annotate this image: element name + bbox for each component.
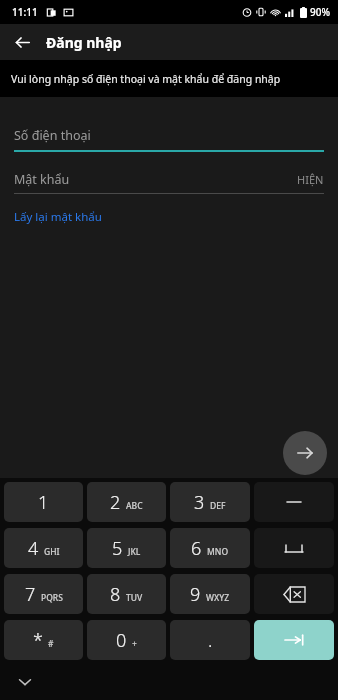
staticText: ABC [126, 500, 143, 512]
button[interactable]: 7 [4, 574, 83, 614]
button[interactable]: 2 [87, 482, 166, 522]
staticText: * [33, 628, 43, 653]
staticText: PQRS [41, 592, 63, 604]
button[interactable]: Tiep tuc [283, 431, 327, 475]
button[interactable]: Lấy lại mật khẩu [14, 209, 102, 225]
staticText: 6 [191, 536, 202, 561]
button[interactable]: Số điện thoại [14, 120, 324, 150]
staticText: TUV [126, 592, 143, 604]
staticText: GHI [44, 546, 60, 558]
staticText: 9 [190, 582, 201, 607]
button[interactable]: Tiep tuc [254, 620, 334, 660]
staticText: MNO [207, 546, 229, 558]
staticText: 11:11 [12, 5, 38, 19]
button[interactable]: Dau cach [254, 528, 334, 568]
staticText: WXYZ [206, 592, 230, 604]
button[interactable]: Quay lai [8, 28, 36, 56]
button[interactable]: 3 [170, 482, 250, 522]
staticText: 4 [28, 536, 39, 561]
button[interactable]: 5 [87, 528, 166, 568]
staticText: 0 [116, 628, 127, 653]
button[interactable]: 0 [87, 620, 166, 660]
button[interactable]: Gach ngang [254, 482, 334, 522]
button[interactable]: 1 [4, 482, 83, 522]
staticText: 8 [110, 582, 121, 607]
staticText: DEF [210, 500, 226, 512]
staticText: 90% [310, 5, 330, 19]
button[interactable]: 6 [170, 528, 250, 568]
staticText: 5 [112, 536, 123, 561]
button[interactable]: 9 [170, 574, 250, 614]
staticText: 3 [194, 490, 205, 515]
button[interactable]: Mật khẩu [14, 165, 324, 193]
staticText: Lấy lại mật khẩu [14, 209, 102, 225]
button[interactable]: * [4, 620, 83, 660]
staticText: Đăng nhập [46, 33, 122, 52]
button[interactable]: Xoa [254, 574, 334, 614]
staticText: HIỆN [297, 172, 324, 187]
staticText: JKL [128, 546, 141, 558]
button[interactable]: 8 [87, 574, 166, 614]
staticText: 1 [38, 490, 49, 515]
button[interactable]: 4 [4, 528, 83, 568]
staticText: # [48, 638, 54, 650]
staticText: . [208, 628, 213, 653]
staticText: Vui lòng nhập số điện thoại và mật khẩu … [11, 72, 281, 86]
button[interactable]: An ban phim [10, 667, 40, 697]
staticText: 2 [110, 490, 121, 515]
button[interactable]: HIỆN [287, 172, 324, 187]
staticText: Mật khẩu [14, 171, 70, 188]
staticText: Số điện thoại [14, 127, 91, 144]
staticText: + [132, 638, 137, 650]
staticText: 7 [25, 582, 36, 607]
button[interactable]: . [170, 620, 250, 660]
